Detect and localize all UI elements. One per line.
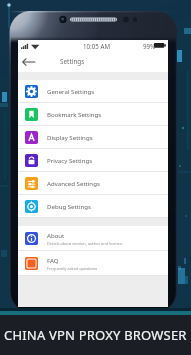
button[interactable]: Bookmark Settings [18, 103, 168, 125]
button[interactable]: Display Settings [18, 126, 168, 148]
staticText: About [47, 231, 65, 239]
staticText: Advanced Settings [47, 179, 100, 187]
staticText: Settings [60, 57, 85, 66]
staticText: General Settings [47, 87, 95, 95]
button[interactable]: Debug Settings [18, 195, 168, 217]
staticText: Frequently asked questions [47, 266, 98, 271]
button[interactable]: About [18, 226, 168, 250]
staticText: 99% [143, 42, 156, 50]
staticText: Debug Settings [47, 202, 91, 210]
staticText: CHINA VPN PROXY BROWSER [4, 326, 187, 344]
button[interactable]: General Settings [18, 80, 168, 102]
staticText: Privacy Settings [47, 156, 93, 164]
button[interactable]: FAQ [18, 251, 168, 275]
button[interactable]: Back [20, 53, 38, 71]
button[interactable]: Advanced Settings [18, 172, 168, 194]
staticText: 10:05 AM [83, 42, 110, 50]
staticText: FAQ [47, 256, 59, 264]
staticText: Details about version, author and licens… [47, 241, 123, 246]
button[interactable]: Privacy Settings [18, 149, 168, 171]
staticText: Bookmark Settings [47, 110, 102, 118]
staticText: Display Settings [47, 133, 93, 141]
